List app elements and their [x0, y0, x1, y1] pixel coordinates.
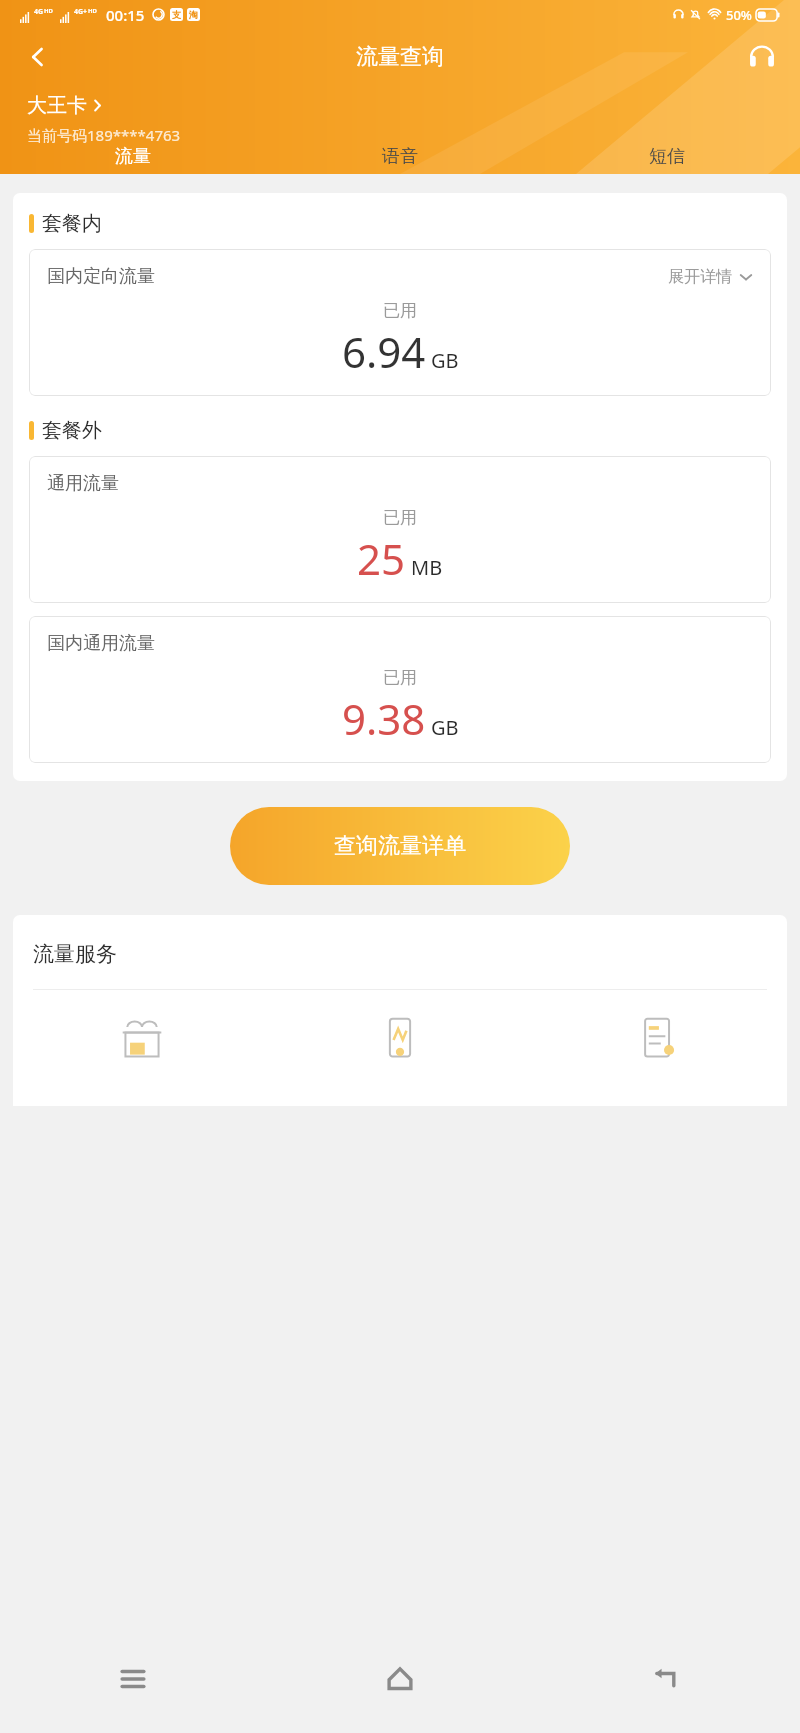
- staticText: 9.38: [342, 690, 426, 747]
- staticText: 支: [172, 9, 181, 20]
- button[interactable]: Data bill: [529, 1016, 787, 1076]
- button[interactable]: Data usage chart: [271, 1016, 529, 1076]
- button[interactable]: 通用流量: [29, 456, 771, 603]
- staticText: 已用: [383, 300, 417, 321]
- button[interactable]: Recent apps: [0, 1625, 266, 1733]
- staticText: 大王卡: [27, 93, 87, 118]
- staticText: 6.94: [342, 323, 426, 380]
- button[interactable]: 国内通用流量: [29, 616, 771, 763]
- staticText: 4G: [34, 7, 44, 17]
- staticText: 语音: [382, 145, 418, 168]
- staticText: 25: [357, 530, 406, 587]
- staticText: 淘: [189, 9, 198, 20]
- staticText: 流量服务: [33, 941, 117, 967]
- staticText: 套餐内: [42, 211, 102, 236]
- staticText: MB: [411, 554, 443, 581]
- button[interactable]: Back: [533, 1625, 800, 1733]
- staticText: 展开详情: [668, 267, 732, 287]
- button[interactable]: 大王卡: [27, 93, 104, 118]
- staticText: 当前号码189****4763: [27, 125, 181, 145]
- button[interactable]: Customer service: [738, 33, 786, 81]
- staticText: 已用: [383, 667, 417, 688]
- staticText: 套餐外: [42, 418, 102, 443]
- staticText: 50%: [726, 6, 752, 24]
- staticText: 流量查询: [356, 43, 444, 71]
- staticText: 已用: [383, 507, 417, 528]
- button[interactable]: Home: [266, 1625, 533, 1733]
- staticText: HD: [44, 7, 53, 15]
- staticText: 国内通用流量: [47, 632, 155, 655]
- staticText: GB: [431, 714, 459, 741]
- staticText: 4G+: [74, 7, 88, 17]
- button[interactable]: Data gift: [13, 1016, 271, 1076]
- button[interactable]: Back: [14, 33, 62, 81]
- staticText: HD: [88, 7, 97, 15]
- button[interactable]: 短信: [533, 145, 800, 174]
- staticText: 国内定向流量: [47, 265, 155, 288]
- staticText: 流量: [115, 145, 151, 168]
- button[interactable]: 查询流量详单: [230, 807, 570, 885]
- staticText: 短信: [649, 145, 685, 168]
- staticText: 通用流量: [47, 472, 119, 495]
- staticText: 00:15: [106, 5, 145, 25]
- button[interactable]: 语音: [266, 145, 533, 174]
- button[interactable]: 国内定向流量: [29, 249, 771, 396]
- button[interactable]: 流量: [0, 145, 266, 174]
- staticText: GB: [431, 347, 459, 374]
- staticText: 查询流量详单: [334, 832, 466, 860]
